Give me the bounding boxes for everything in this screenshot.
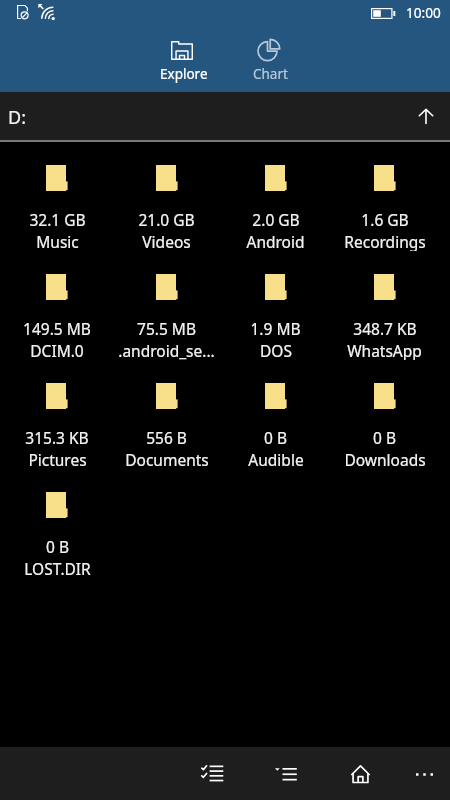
staticText: Recordings [344,231,426,251]
staticText: .android_se... [118,340,215,360]
staticText: 21.0 GB [138,209,195,230]
button[interactable]: 315.3 KB [2,360,112,469]
staticText: Videos [142,231,191,251]
button[interactable]: 75.5 MB [112,251,221,360]
button[interactable]: 21.0 GB [112,142,221,251]
staticText: Downloads [344,449,426,469]
staticText: Chart [253,65,288,83]
staticText: D: [8,105,26,130]
staticText: 1.9 MB [250,318,301,339]
staticText: 556 B [146,427,187,448]
button[interactable]: 0 B [221,360,330,469]
button[interactable]: 149.5 MB [2,251,112,360]
button[interactable]: 2.0 GB [221,142,330,251]
staticText: Audible [248,449,304,469]
staticText: 0 B [46,536,69,557]
staticText: DOS [260,340,292,360]
button[interactable]: D: [0,92,450,140]
staticText: Android [246,231,305,251]
button[interactable]: 0 B [2,469,112,578]
staticText: 2.0 GB [252,209,300,230]
button[interactable]: 556 B [112,360,221,469]
staticText: Documents [125,449,209,469]
staticText: 32.1 GB [29,209,86,230]
button[interactable]: Chart [236,33,305,87]
button[interactable]: Explore [147,33,216,87]
button[interactable]: 32.1 GB [2,142,112,251]
button[interactable]: Home [336,750,384,798]
staticText: DCIM.0 [30,340,84,360]
staticText: 0 B [264,427,287,448]
button[interactable]: Sort [262,750,310,798]
staticText: 10:00 [406,3,441,22]
button[interactable]: Up one level [406,96,446,136]
staticText: 315.3 KB [25,427,89,448]
staticText: 1.6 GB [361,209,409,230]
button[interactable]: More [400,750,448,798]
button[interactable]: 1.9 MB [221,251,330,360]
staticText: WhatsApp [347,340,422,360]
staticText: 75.5 MB [137,318,196,339]
staticText: LOST.DIR [24,558,91,578]
staticText: Music [36,231,79,251]
staticText: 149.5 MB [23,318,91,339]
button[interactable]: 1.6 GB [330,142,439,251]
staticText: 0 B [373,427,396,448]
staticText: Pictures [28,449,87,469]
staticText: 348.7 KB [353,318,417,339]
button[interactable]: 0 B [330,360,439,469]
button[interactable]: Select items [188,749,236,797]
button[interactable]: 348.7 KB [330,251,439,360]
staticText: Explore [160,65,208,83]
